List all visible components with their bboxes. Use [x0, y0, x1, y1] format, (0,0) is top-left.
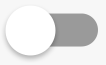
button[interactable]: Toggle: [0, 0, 106, 65]
